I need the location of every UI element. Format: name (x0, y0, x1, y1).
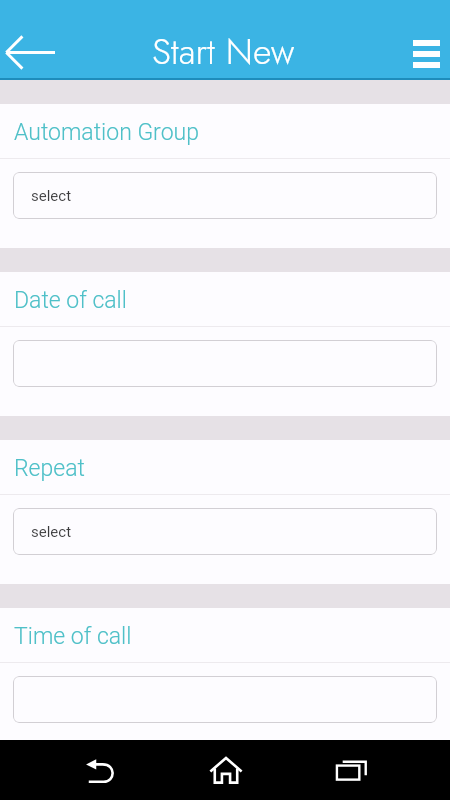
button[interactable]: Recent apps (288, 740, 413, 800)
button[interactable]: select (13, 172, 437, 219)
staticText: Start New (152, 25, 295, 77)
button[interactable]: Menu (390, 29, 450, 79)
staticText: select (31, 523, 72, 541)
staticText: Automation Group (14, 119, 199, 146)
button[interactable]: Back (0, 27, 66, 77)
staticText: Time of call (14, 623, 132, 650)
button[interactable]: Back (38, 740, 163, 800)
button[interactable] (13, 676, 437, 723)
button[interactable] (13, 340, 437, 387)
staticText: select (31, 187, 72, 205)
staticText: Date of call (14, 287, 127, 314)
staticText: Repeat (14, 455, 85, 482)
button[interactable]: select (13, 508, 437, 555)
button[interactable]: Home (163, 740, 288, 800)
